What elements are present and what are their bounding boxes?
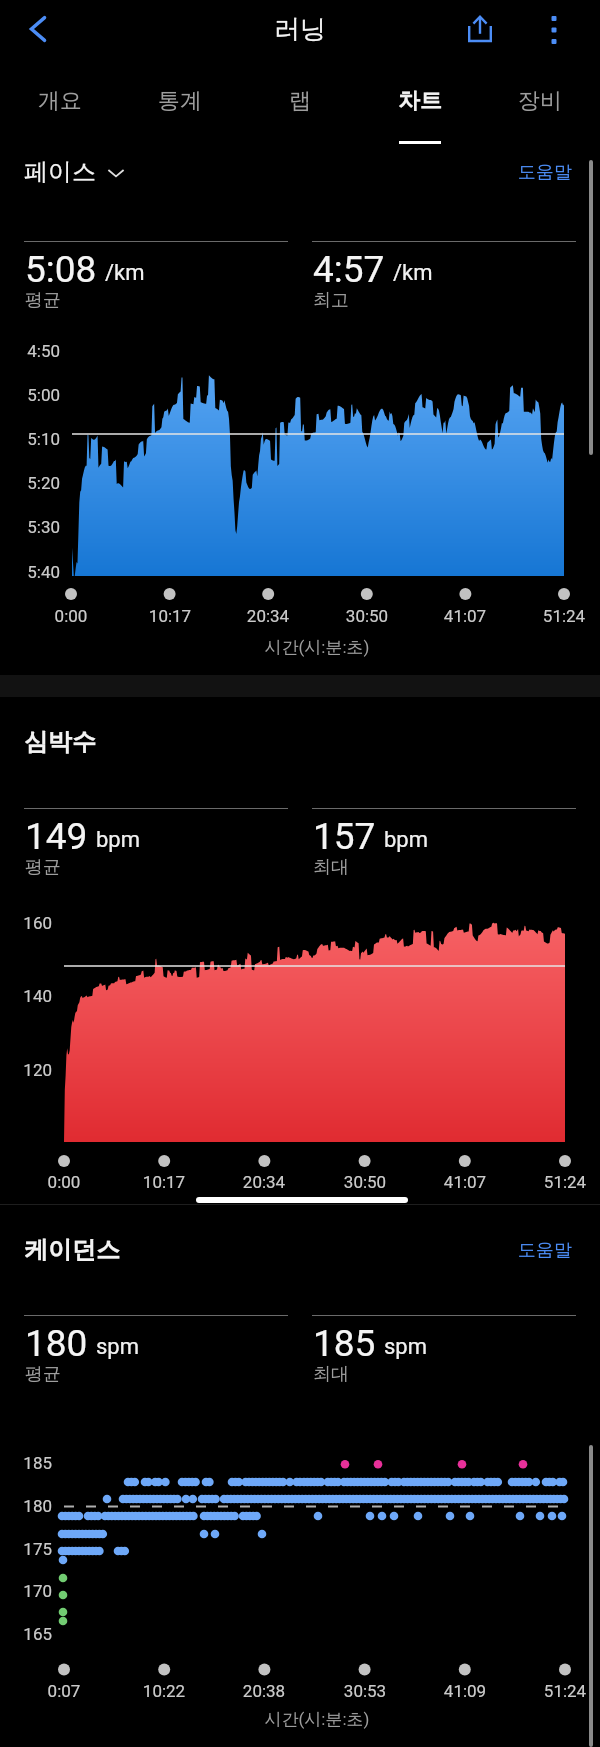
staticText: 통계	[120, 87, 240, 115]
staticText: 30:50	[320, 1172, 410, 1192]
button[interactable]: More options	[528, 3, 580, 55]
staticText: 시간(시:분:초)	[17, 1709, 600, 1730]
staticText: 51:24	[520, 1681, 600, 1701]
button[interactable]: 도움말	[500, 1239, 572, 1262]
staticText: 5:10	[0, 429, 60, 449]
staticText: 5:30	[0, 517, 60, 537]
staticText: 0:00	[19, 1172, 109, 1192]
staticText: spm	[384, 1334, 428, 1360]
staticText: 심박수	[24, 727, 96, 757]
staticText: 185	[0, 1453, 52, 1473]
staticText: 41:07	[420, 1172, 510, 1192]
staticText: 30:50	[322, 606, 412, 626]
staticText: 149	[25, 815, 88, 858]
staticText: 51:24	[519, 606, 600, 626]
staticText: 평균	[25, 1363, 61, 1386]
staticText: 평균	[25, 856, 61, 879]
staticText: 10:22	[119, 1681, 209, 1701]
staticText: 41:07	[420, 606, 510, 626]
button[interactable]: Back	[12, 3, 64, 55]
staticText: 20:34	[223, 606, 313, 626]
staticText: spm	[96, 1334, 140, 1360]
staticText: /km	[105, 260, 145, 286]
staticText: /km	[393, 260, 433, 286]
staticText: 185	[313, 1322, 376, 1365]
staticText: 시간(시:분:초)	[17, 637, 600, 658]
button[interactable]: 페이스	[24, 157, 126, 187]
staticText: 175	[0, 1539, 52, 1559]
staticText: 170	[0, 1581, 52, 1601]
button[interactable]: 개요	[0, 58, 120, 148]
staticText: 최대	[313, 856, 349, 879]
staticText: 차트	[360, 87, 480, 115]
staticText: 10:17	[119, 1172, 209, 1192]
staticText: 4:50	[0, 341, 60, 361]
staticText: 157	[313, 815, 376, 858]
staticText: 케이던스	[24, 1235, 120, 1265]
staticText: 페이스	[24, 157, 96, 187]
staticText: 5:40	[0, 562, 60, 582]
button[interactable]: 장비	[480, 58, 600, 148]
staticText: 120	[0, 1060, 52, 1080]
staticText: 30:53	[320, 1681, 410, 1701]
staticText: 140	[0, 986, 52, 1006]
staticText: 러닝	[274, 13, 326, 46]
staticText: 0:07	[19, 1681, 109, 1701]
staticText: 5:00	[0, 385, 60, 405]
staticText: bpm	[96, 827, 140, 853]
staticText: 최대	[313, 1363, 349, 1386]
staticText: 5:08	[25, 248, 97, 291]
button[interactable]: 통계	[120, 58, 240, 148]
staticText: 장비	[480, 87, 600, 115]
staticText: 180	[0, 1496, 52, 1516]
staticText: 165	[0, 1624, 52, 1644]
staticText: 평균	[25, 289, 61, 312]
staticText: 180	[25, 1322, 88, 1365]
staticText: 랩	[240, 87, 360, 115]
staticText: 160	[0, 913, 52, 933]
staticText: 41:09	[420, 1681, 510, 1701]
staticText: bpm	[384, 827, 428, 853]
button[interactable]: 랩	[240, 58, 360, 148]
staticText: 20:38	[219, 1681, 309, 1701]
staticText: 0:00	[26, 606, 116, 626]
button[interactable]: Share	[454, 3, 506, 55]
staticText: 5:20	[0, 473, 60, 493]
staticText: 개요	[0, 87, 120, 115]
button[interactable]: 차트	[360, 58, 480, 148]
staticText: 51:24	[520, 1172, 600, 1192]
staticText: 10:17	[125, 606, 215, 626]
button[interactable]: 도움말	[500, 161, 572, 184]
staticText: 4:57	[313, 248, 385, 291]
staticText: 최고	[313, 289, 349, 312]
staticText: 20:34	[219, 1172, 309, 1192]
